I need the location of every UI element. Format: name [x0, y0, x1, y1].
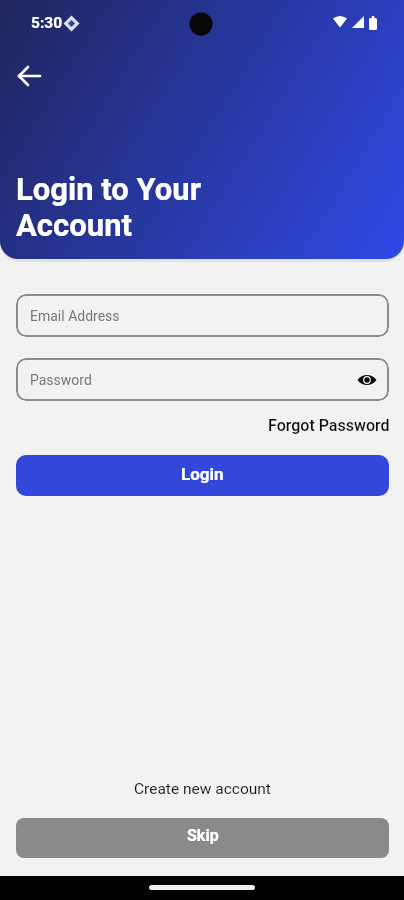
staticText: Password	[30, 372, 92, 388]
button[interactable]: Password	[16, 358, 389, 401]
button[interactable]: Forgot Password	[268, 416, 390, 435]
button[interactable]: Skip	[16, 818, 389, 858]
button[interactable]: Create new account	[134, 780, 271, 798]
staticText: 5:30	[31, 14, 63, 32]
button[interactable]: Email Address	[16, 294, 389, 337]
staticText: Login to Your Account	[16, 171, 202, 244]
button[interactable]	[355, 368, 379, 392]
button[interactable]	[16, 62, 44, 90]
button[interactable]: Login	[16, 455, 389, 496]
staticText: Login	[181, 464, 224, 484]
staticText: Email Address	[30, 308, 120, 324]
staticText: Skip	[187, 826, 219, 845]
